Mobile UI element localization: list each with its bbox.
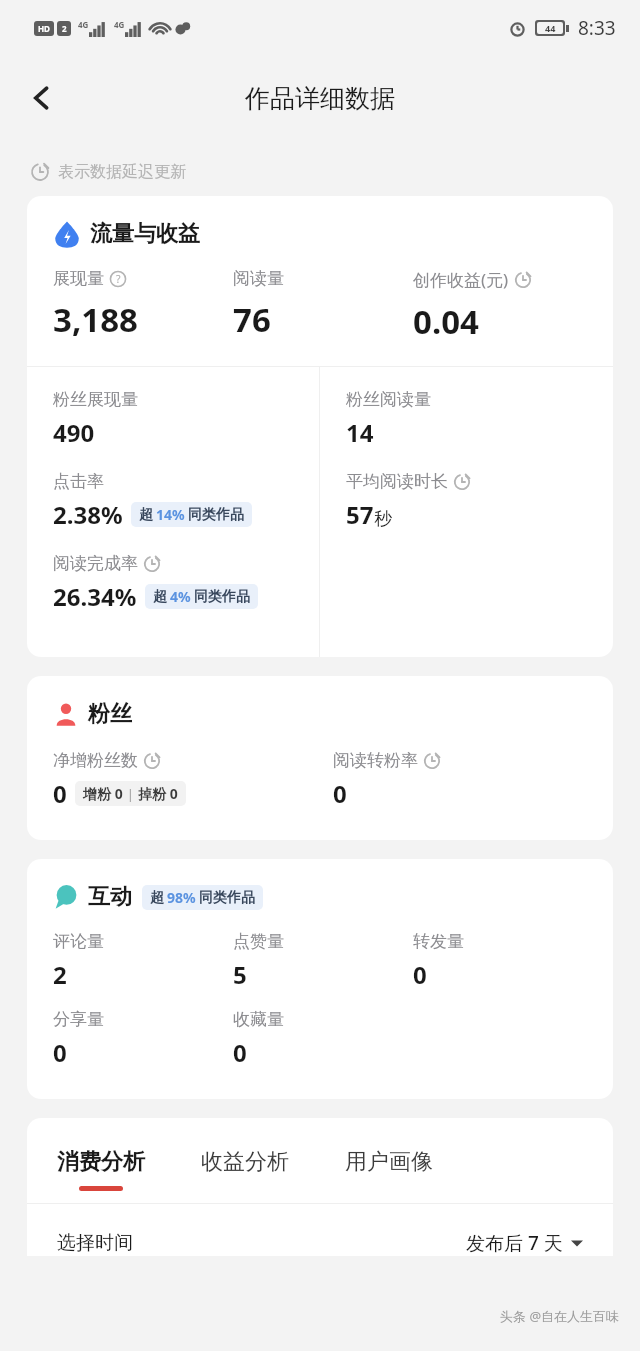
staticText: 粉丝展现量 [53, 389, 138, 410]
button[interactable]: 超 [139, 505, 244, 524]
button[interactable]: 超 [153, 587, 250, 606]
staticText: 评论量 [53, 931, 104, 952]
staticText: 表示数据延迟更新 [58, 162, 186, 182]
staticText: 超 [150, 889, 164, 907]
staticText: 消费分析 [57, 1148, 145, 1176]
staticText: 76 [233, 297, 271, 342]
staticText: 4G [114, 19, 125, 30]
staticText: 增粉 0 [83, 784, 123, 803]
staticText: 阅读完成率 [53, 553, 138, 574]
staticText: 发布后 7 天 [466, 1230, 563, 1256]
staticText: 用户画像 [345, 1148, 433, 1176]
staticText: 同类作品 [194, 588, 250, 606]
staticText: 14% [156, 505, 185, 524]
staticText: 0 [333, 777, 347, 810]
staticText: 3,188 [53, 297, 138, 342]
button[interactable]: 用户画像 [345, 1148, 433, 1186]
staticText: ? [116, 272, 121, 286]
staticText: 57 [346, 498, 374, 531]
staticText: 0 [233, 1036, 247, 1069]
staticText: 阅读转粉率 [333, 750, 418, 771]
staticText: 0.04 [413, 299, 479, 344]
staticText: 同类作品 [199, 889, 255, 907]
staticText: 分享量 [53, 1009, 104, 1030]
staticText: | [127, 786, 134, 802]
staticText: 490 [53, 416, 95, 449]
button[interactable]: 收益分析 [201, 1148, 289, 1186]
staticText: 0 [53, 777, 67, 810]
staticText: 净增粉丝数 [53, 750, 138, 771]
staticText: 平均阅读时长 [346, 471, 448, 492]
staticText: 4% [170, 587, 191, 606]
staticText: 转发量 [413, 931, 464, 952]
staticText: 超 [153, 588, 167, 606]
staticText: 14 [346, 416, 374, 449]
staticText: 5 [233, 958, 247, 991]
staticText: 同类作品 [188, 506, 244, 524]
staticText: 展现量 [53, 268, 104, 289]
staticText: 26.34% [53, 580, 137, 613]
staticText: 秒 [374, 508, 392, 531]
staticText: 超 [139, 506, 153, 524]
button[interactable]: 超 [150, 888, 255, 907]
staticText: 点赞量 [233, 931, 284, 952]
staticText: 4G [78, 19, 89, 30]
staticText: 2 [62, 23, 67, 34]
staticText: 阅读量 [233, 268, 284, 289]
button[interactable]: Back [16, 72, 68, 124]
staticText: 8:33 [578, 15, 616, 41]
staticText: HD [38, 23, 50, 34]
button[interactable]: 消费分析 [57, 1148, 145, 1191]
staticText: 选择时间 [57, 1231, 133, 1255]
staticText: 44 [545, 22, 556, 34]
staticText: 0 [413, 958, 427, 991]
staticText: 98% [167, 888, 196, 907]
button[interactable]: 发布后 7 天 [466, 1230, 583, 1256]
staticText: 流量与收益 [90, 220, 200, 248]
staticText: 2.38% [53, 498, 123, 531]
staticText: 作品详细数据 [245, 83, 395, 114]
staticText: 收益分析 [201, 1148, 289, 1176]
button[interactable]: 增粉 0 [83, 784, 178, 803]
staticText: 粉丝 [88, 700, 132, 728]
staticText: 收藏量 [233, 1009, 284, 1030]
staticText: 头条 @自在人生百味 [500, 1307, 620, 1325]
staticText: 点击率 [53, 471, 104, 492]
staticText: 粉丝阅读量 [346, 389, 431, 410]
staticText: 互动 [88, 883, 132, 911]
staticText: 0 [53, 1036, 67, 1069]
staticText: 2 [53, 958, 67, 991]
staticText: 掉粉 0 [138, 784, 178, 803]
staticText: 创作收益(元) [413, 268, 509, 291]
